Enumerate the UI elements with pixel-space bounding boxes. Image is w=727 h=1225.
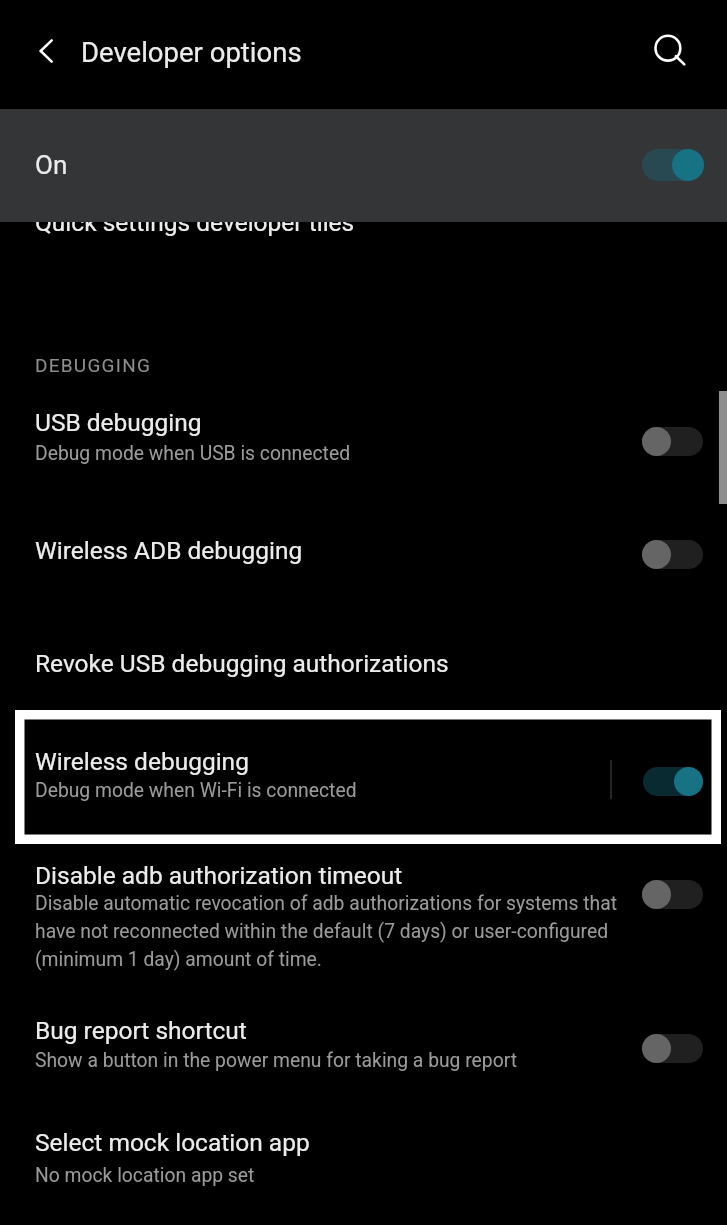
staticText: USB debugging [35, 408, 202, 437]
staticText: Show a button in the power menu for taki… [35, 1049, 517, 1072]
staticText: On [35, 150, 68, 180]
button[interactable]: Wireless debugging [0, 710, 727, 844]
button[interactable]: USB debugging [0, 396, 727, 488]
staticText: Wireless debugging [35, 747, 249, 776]
staticText: Debug mode when Wi-Fi is connected [35, 779, 357, 802]
staticText: Developer options [81, 36, 302, 68]
button[interactable]: Switch, off [642, 427, 703, 456]
staticText: No mock location app set [35, 1164, 255, 1187]
button[interactable]: Bug report shortcut [0, 1002, 727, 1094]
staticText: Disable adb authorization timeout [35, 861, 403, 890]
button[interactable]: Switch, on [642, 149, 704, 181]
button[interactable]: Switch, off [642, 540, 703, 569]
button[interactable]: Revoke USB debugging authorizations [0, 622, 727, 700]
staticText: Disable automatic revocation of adb auth… [35, 892, 618, 971]
staticText: Wireless ADB debugging [35, 536, 303, 565]
button[interactable]: Search [643, 23, 693, 73]
staticText: Debug mode when USB is connected [35, 442, 351, 465]
button[interactable]: Wireless ADB debugging [0, 512, 727, 590]
staticText: Bug report shortcut [35, 1016, 247, 1045]
staticText: Select mock location app [35, 1128, 310, 1157]
button[interactable]: Quick settings developer tiles [0, 180, 727, 250]
button[interactable]: Select mock location app [0, 1112, 727, 1212]
button[interactable]: Switch, off [642, 1034, 703, 1063]
staticText: Quick settings developer tiles [35, 208, 355, 237]
button[interactable]: Switch, off [642, 880, 703, 909]
button[interactable]: Disable adb authorization timeout [0, 856, 727, 986]
button[interactable]: On [0, 109, 727, 222]
staticText: DEBUGGING [35, 354, 152, 376]
button[interactable]: Switch, on [643, 767, 703, 796]
button[interactable]: Navigate up [22, 27, 70, 75]
staticText: Revoke USB debugging authorizations [35, 649, 449, 678]
